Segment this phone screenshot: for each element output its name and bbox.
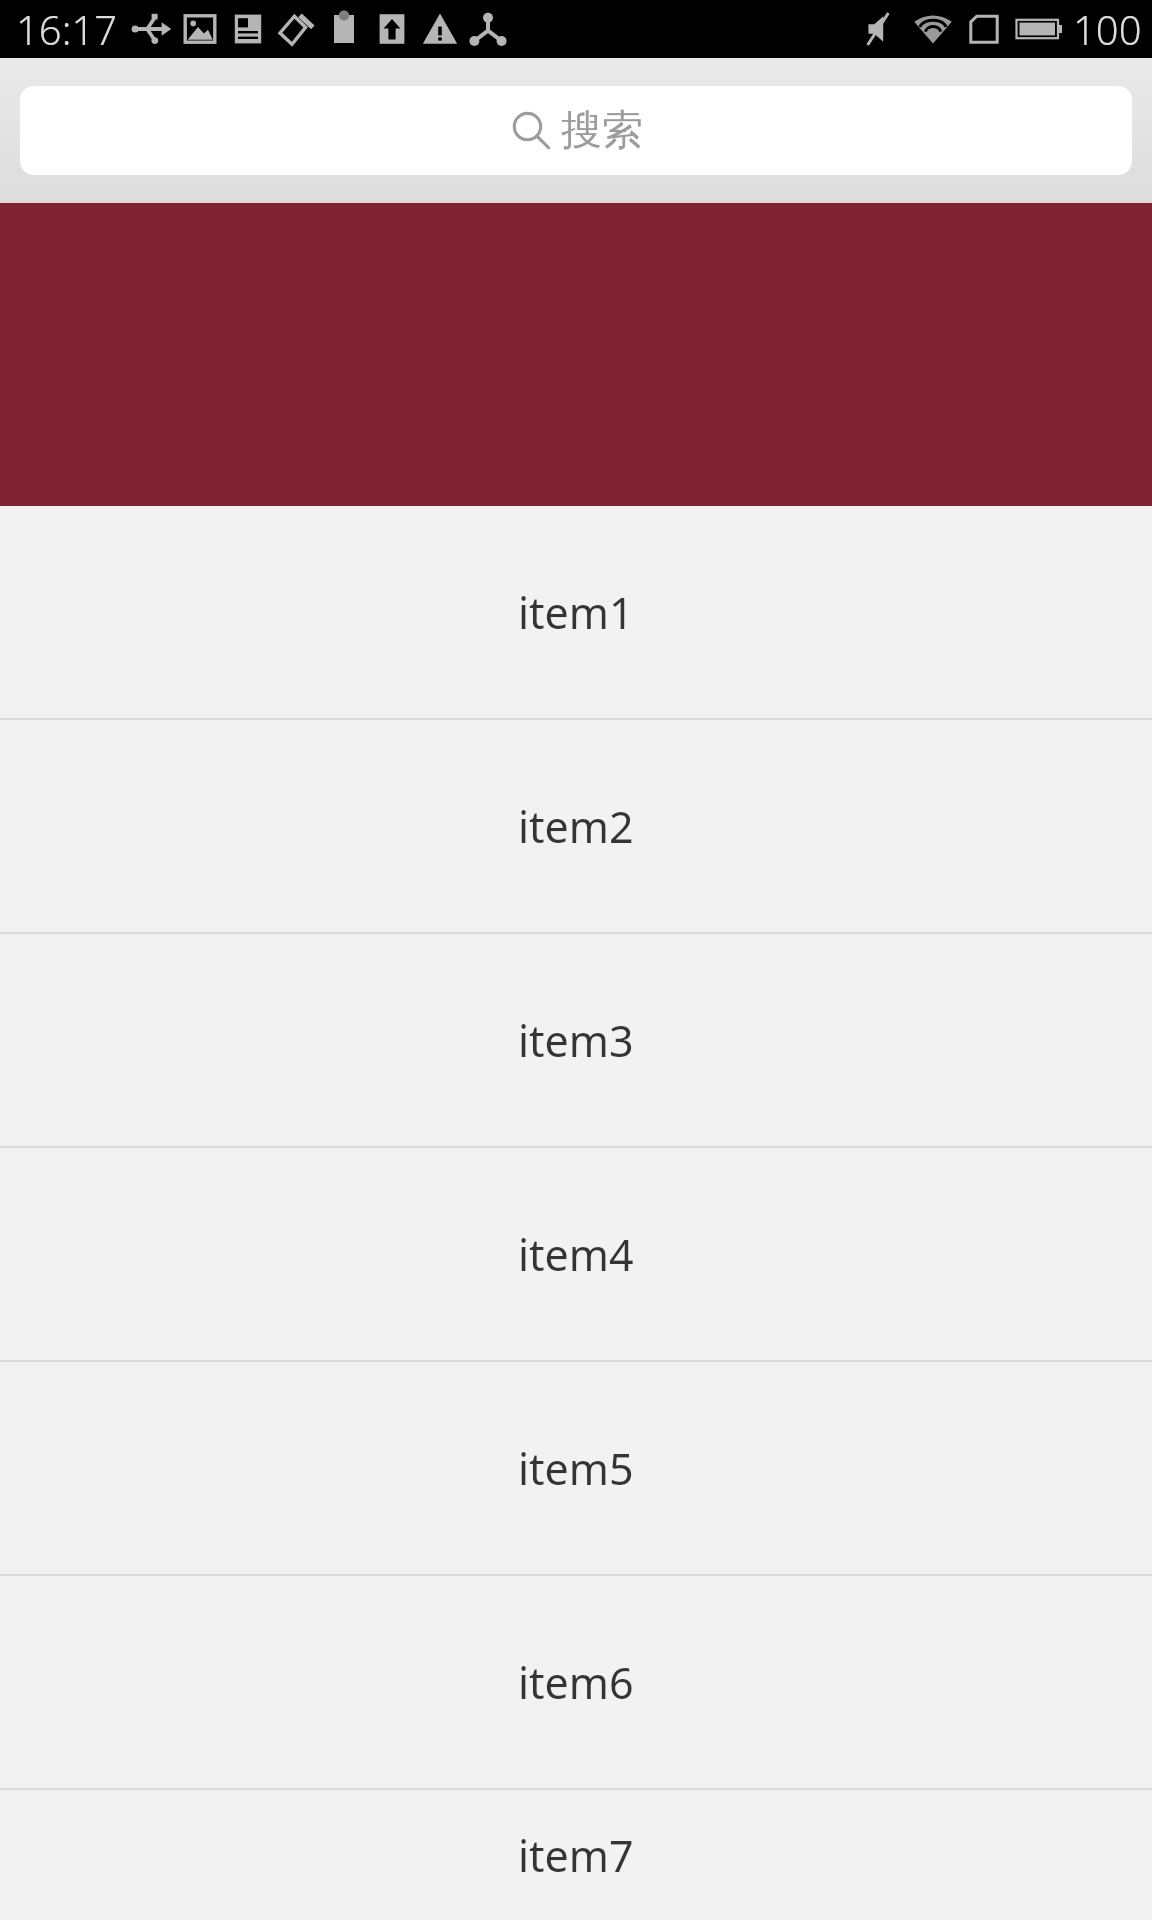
staticText: 16:17 — [16, 2, 118, 56]
button[interactable]: item6 — [0, 1576, 1152, 1788]
staticText: 100 — [1073, 2, 1142, 56]
staticText: item5 — [518, 1439, 634, 1498]
staticText: item6 — [518, 1653, 634, 1712]
button[interactable]: Search — [20, 86, 1132, 175]
button[interactable]: item1 — [0, 506, 1152, 718]
staticText: item4 — [518, 1225, 634, 1284]
button[interactable]: item7 — [0, 1790, 1152, 1920]
button[interactable]: item4 — [0, 1148, 1152, 1360]
button[interactable]: item3 — [0, 934, 1152, 1146]
staticText: item7 — [518, 1826, 634, 1885]
staticText: item3 — [518, 1011, 634, 1070]
button[interactable]: item2 — [0, 720, 1152, 932]
staticText: item1 — [518, 583, 634, 642]
button[interactable]: item5 — [0, 1362, 1152, 1574]
staticText: item2 — [518, 797, 634, 856]
staticText: 搜索 — [561, 105, 643, 157]
